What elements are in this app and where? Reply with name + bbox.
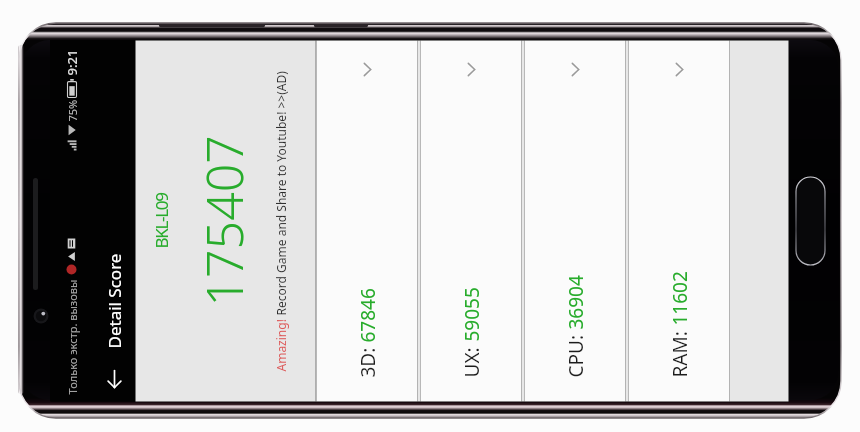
button[interactable]: Back [92, 358, 135, 401]
staticText: Amazing! [272, 318, 288, 371]
staticText: CPU: [562, 329, 588, 377]
staticText: 36904 [562, 274, 588, 329]
button[interactable]: 3D: [316, 40, 417, 401]
staticText: 3D: [354, 342, 380, 377]
staticText: 175407 [189, 134, 257, 306]
staticText: 9:21 [62, 49, 80, 75]
staticText: Record Game and Share to Youtube! >>(AD) [272, 70, 288, 318]
staticText: BKL-L09 [149, 192, 172, 248]
button[interactable]: UX: [420, 40, 521, 401]
staticText: Только экстр. вызовы [64, 279, 79, 394]
staticText: 59055 [458, 286, 484, 341]
staticText: 67846 [354, 287, 380, 342]
button[interactable]: CPU: [524, 40, 625, 401]
button[interactable]: RAM: [628, 40, 729, 401]
staticText: RAM: [666, 325, 692, 377]
staticText: 75% [64, 99, 79, 121]
staticText: Detail Score [102, 253, 125, 348]
staticText: UX: [458, 341, 484, 377]
staticText: 11602 [666, 270, 692, 325]
